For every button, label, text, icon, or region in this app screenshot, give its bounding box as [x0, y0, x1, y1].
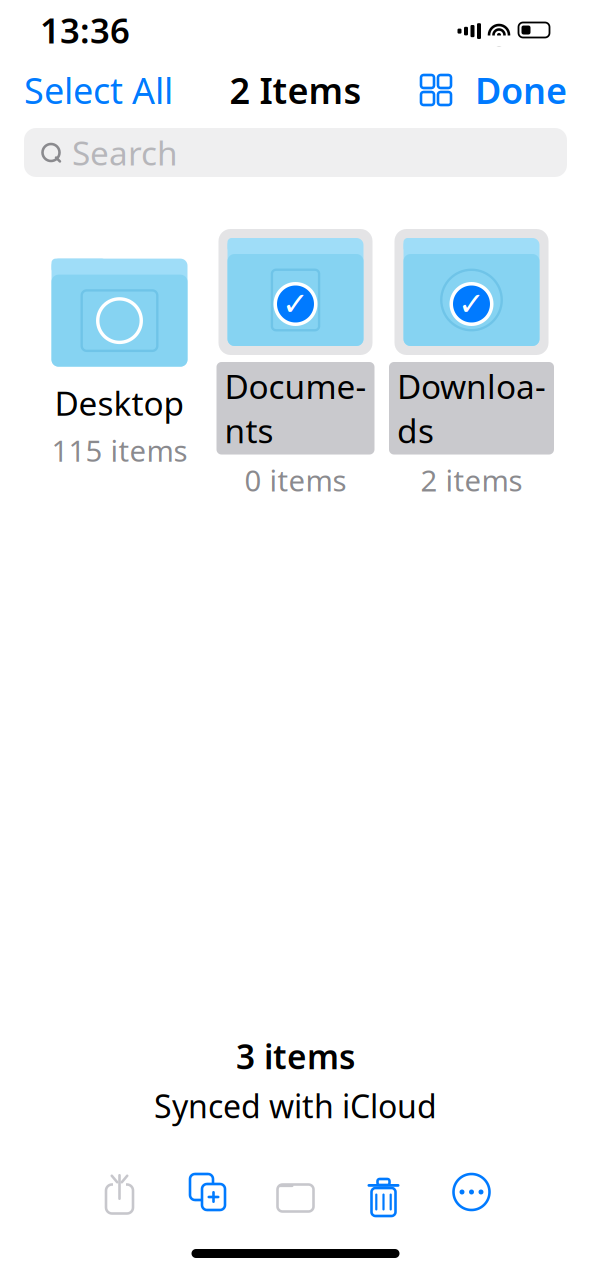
button[interactable]: Search: [24, 128, 567, 177]
staticText: Select All: [24, 66, 173, 114]
staticText: ✓: [458, 286, 485, 322]
button[interactable]: Move to folder: [251, 1161, 339, 1223]
button[interactable]: ✓: [383, 229, 559, 499]
staticText: 115 items: [51, 431, 187, 470]
button[interactable]: More: [427, 1161, 515, 1223]
staticText: Desktop: [54, 381, 184, 425]
staticText: Done: [475, 66, 567, 114]
staticText: Search: [72, 130, 178, 175]
button[interactable]: Done: [475, 58, 567, 122]
staticText: 2 items: [420, 460, 522, 499]
button[interactable]: Select All: [24, 58, 173, 122]
button[interactable]: Duplicate: [163, 1161, 251, 1223]
staticText: 0 items: [244, 460, 346, 499]
staticText: ✓: [282, 286, 309, 322]
button[interactable]: Share: [75, 1161, 163, 1223]
staticText: 3 items: [236, 1034, 355, 1078]
button[interactable]: Desktop: [31, 259, 207, 470]
staticText: Synced with iCloud: [154, 1084, 437, 1127]
staticText: 13:36: [40, 7, 130, 53]
button[interactable]: Delete: [339, 1161, 427, 1223]
staticText: 2 Items: [229, 66, 361, 114]
button[interactable]: ✓: [207, 229, 383, 499]
staticText: Downloads: [397, 364, 546, 452]
staticText: Documents: [224, 364, 366, 452]
button[interactable]: Grid view: [419, 73, 453, 107]
